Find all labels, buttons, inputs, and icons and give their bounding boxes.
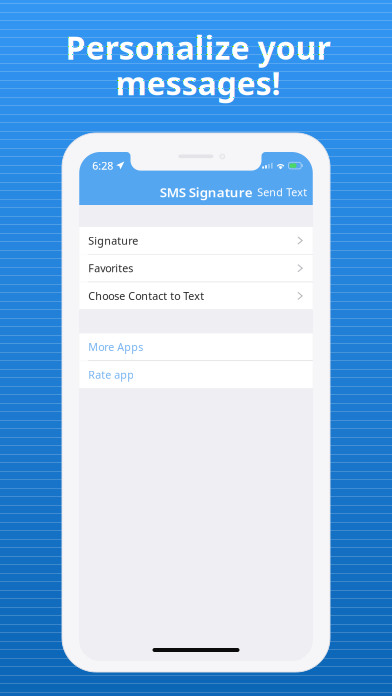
- staticText: Favorites: [88, 261, 133, 275]
- staticText: Personalize your: [65, 26, 330, 68]
- staticText: SMS Signature: [160, 183, 253, 201]
- button[interactable]: Choose Contact to Text: [79, 282, 313, 309]
- staticText: More Apps: [88, 340, 143, 354]
- button[interactable]: More Apps: [79, 333, 313, 360]
- staticText: Rate app: [88, 367, 134, 382]
- staticText: Send Text: [257, 185, 307, 199]
- button[interactable]: SMS Signature: [157, 179, 256, 205]
- button[interactable]: Signature: [79, 227, 313, 254]
- staticText: Choose Contact to Text: [88, 289, 204, 303]
- staticText: 6:28: [92, 158, 113, 173]
- staticText: messages!: [115, 61, 280, 104]
- button[interactable]: Favorites: [79, 255, 313, 282]
- staticText: Signature: [88, 233, 138, 248]
- button[interactable]: Send Text: [254, 181, 310, 203]
- button[interactable]: Rate app: [79, 361, 313, 388]
